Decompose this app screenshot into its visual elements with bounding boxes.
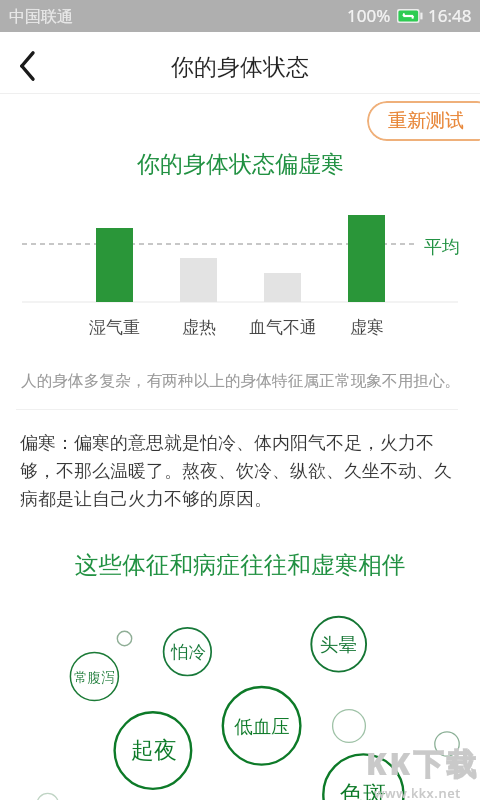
- button[interactable]: 起夜: [115, 712, 192, 789]
- button[interactable]: 怕冷: [164, 628, 212, 676]
- button[interactable]: 低血压: [223, 687, 301, 765]
- staticText: 人的身体多复杂，有两种以上的身体特征属正常现象不用担心。: [21, 371, 461, 391]
- staticText: 虚寒: [350, 317, 384, 338]
- button[interactable]: 色斑: [323, 754, 403, 800]
- staticText: 色斑: [340, 780, 386, 800]
- staticText: 偏寒：偏寒的意思就是怕冷、体内阳气不足，火力不够，不那么温暖了。熬夜、饮冷、纵欲…: [20, 432, 462, 510]
- staticText: 100%: [347, 4, 391, 27]
- staticText: 16:48: [428, 4, 472, 27]
- button[interactable]: 头晕: [311, 617, 366, 672]
- staticText: www.kkx.net: [374, 784, 461, 800]
- staticText: 中国联通: [9, 7, 73, 27]
- staticText: 你的身体状态: [171, 53, 309, 82]
- staticText: 起夜: [131, 736, 177, 765]
- button[interactable]: 返回: [0, 38, 54, 94]
- staticText: 虚热: [182, 317, 216, 338]
- staticText: 你的身体状态偏虚寒: [137, 150, 344, 179]
- staticText: 这些体征和病症往往和虚寒相伴: [75, 550, 406, 580]
- staticText: 平均: [424, 236, 460, 259]
- staticText: 头晕: [320, 633, 357, 656]
- staticText: 重新测试: [388, 109, 464, 133]
- staticText: 常腹泻: [74, 669, 115, 686]
- staticText: 低血压: [234, 715, 290, 738]
- button[interactable]: 常腹泻: [70, 653, 118, 701]
- button[interactable]: 重新测试: [367, 101, 480, 141]
- staticText: KK下载: [366, 743, 480, 784]
- staticText: 怕冷: [171, 641, 206, 663]
- staticText: 血气不通: [249, 317, 317, 338]
- staticText: 湿气重: [89, 317, 140, 338]
